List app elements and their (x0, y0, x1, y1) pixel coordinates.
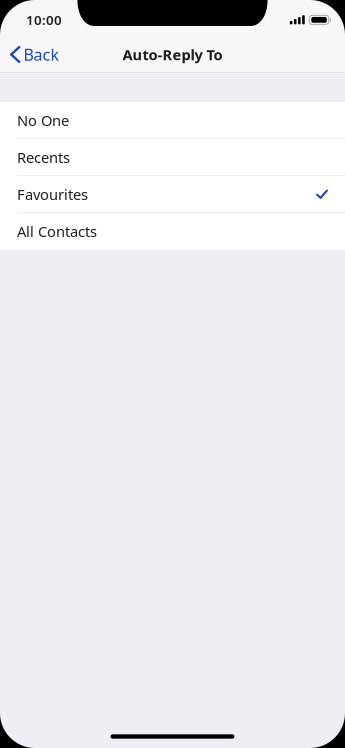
staticText: 10:00 (26, 11, 62, 29)
staticText: Favourites (17, 184, 88, 204)
staticText: Back (23, 44, 59, 65)
button[interactable]: No One (0, 102, 345, 139)
button[interactable]: All Contacts (0, 213, 345, 249)
button[interactable]: Recents (0, 139, 345, 176)
button[interactable]: Favourites (0, 176, 345, 213)
button[interactable]: Back (2, 36, 67, 73)
staticText: Auto-Reply To (122, 45, 222, 64)
staticText: Recents (17, 147, 70, 167)
staticText: All Contacts (17, 221, 97, 241)
staticText: No One (17, 110, 69, 130)
